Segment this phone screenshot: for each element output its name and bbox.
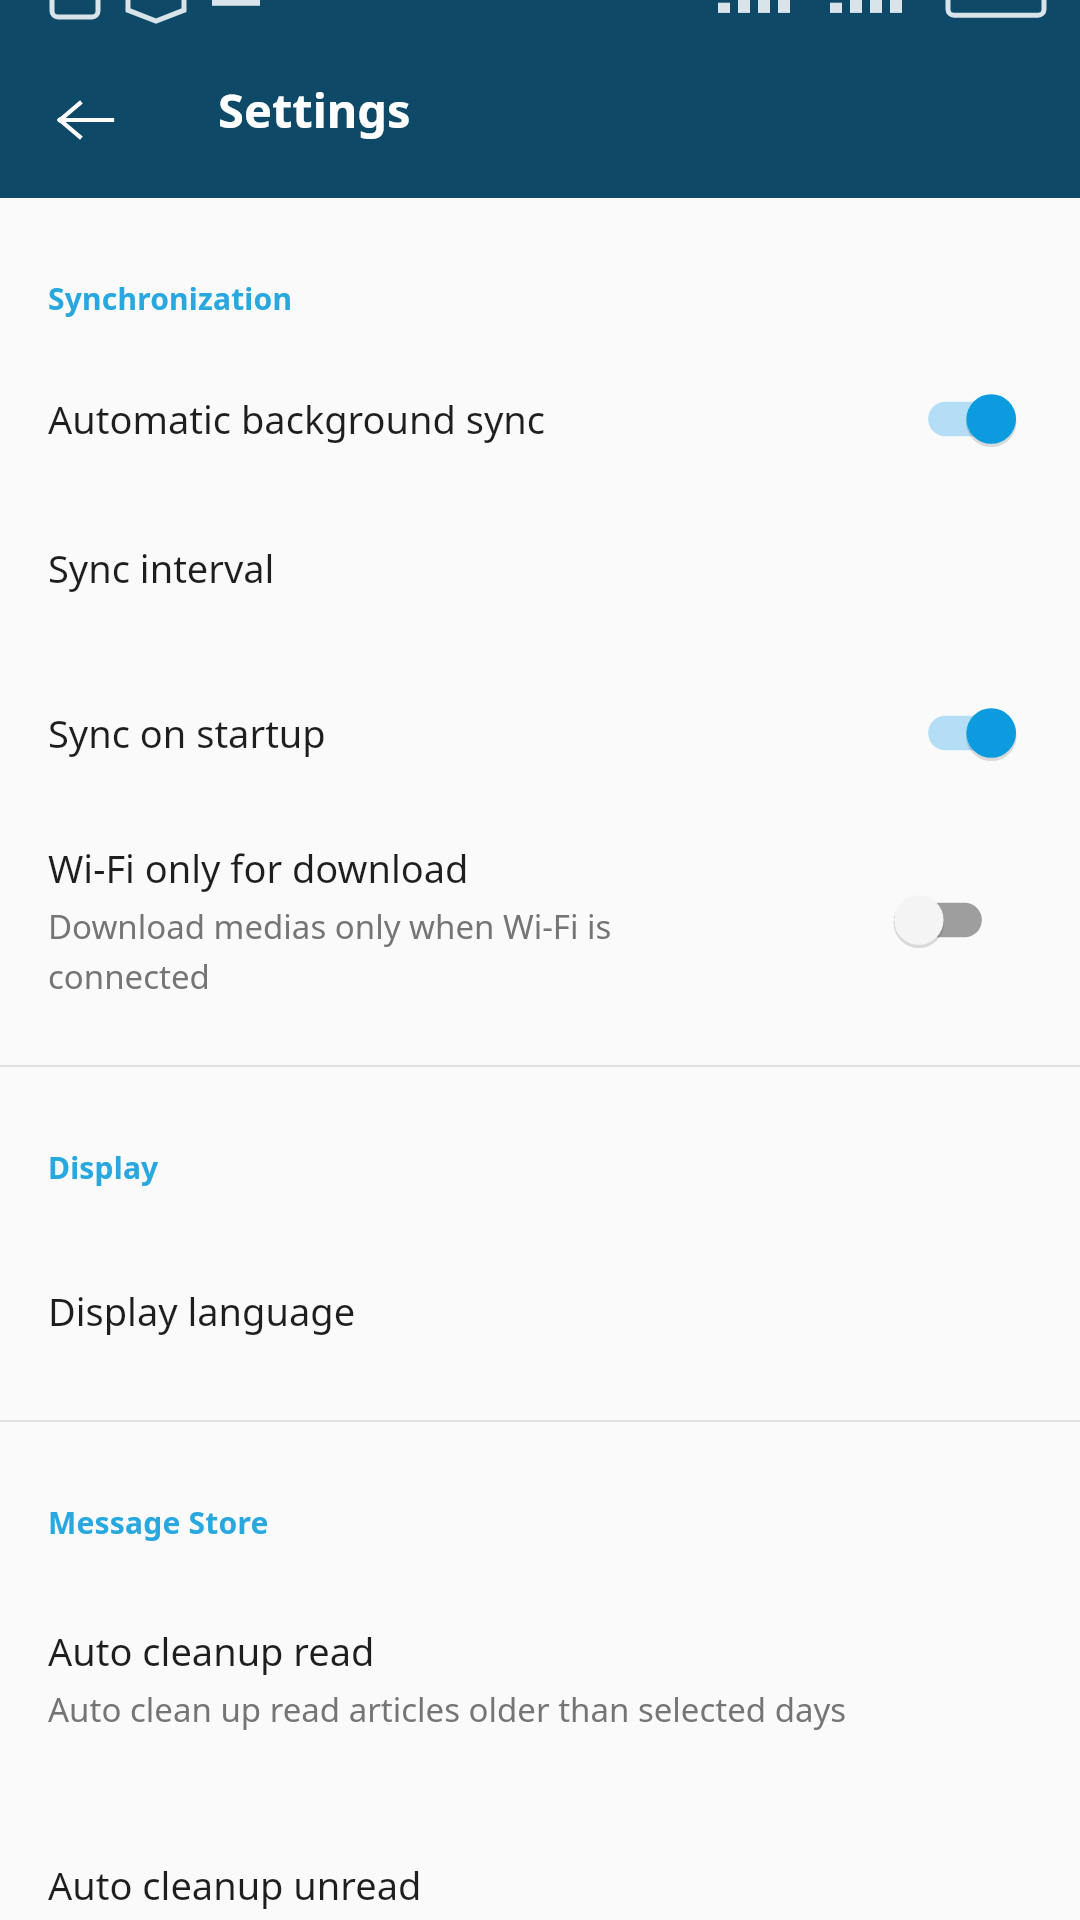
- staticText: Wi-Fi only for download: [48, 842, 469, 894]
- staticText: Automatic background sync: [48, 393, 546, 445]
- staticText: Display: [48, 1147, 1080, 1188]
- staticText: Auto cleanup unread: [48, 1859, 422, 1911]
- staticText: Message Store: [48, 1502, 1080, 1543]
- staticText: Synchronization: [48, 278, 1080, 319]
- button[interactable]: Back: [40, 74, 132, 166]
- staticText: Settings: [218, 78, 411, 142]
- button[interactable]: Automatic background sync: [0, 353, 1080, 485]
- button[interactable]: Wi-Fi only for download: [0, 815, 1080, 1025]
- staticText: Auto cleanup read: [48, 1625, 375, 1677]
- button[interactable]: Auto cleanup read: [0, 1593, 1080, 1763]
- button[interactable]: Display language: [0, 1246, 1080, 1376]
- staticText: Display language: [48, 1285, 356, 1337]
- button[interactable]: Auto cleanup unread: [0, 1849, 1080, 1920]
- staticText: Sync on startup: [48, 707, 326, 759]
- staticText: Sync interval: [48, 542, 275, 594]
- staticText: Download medias only when Wi-Fi is conne…: [48, 904, 612, 999]
- button[interactable]: Sync on startup: [0, 650, 1080, 815]
- button[interactable]: Automatic background sync: [890, 381, 1020, 457]
- button[interactable]: Wi-Fi only for download: [890, 882, 1020, 958]
- button[interactable]: Sync interval: [0, 485, 1080, 650]
- button[interactable]: Sync on startup: [890, 695, 1020, 771]
- staticText: Auto clean up read articles older than s…: [48, 1687, 847, 1732]
